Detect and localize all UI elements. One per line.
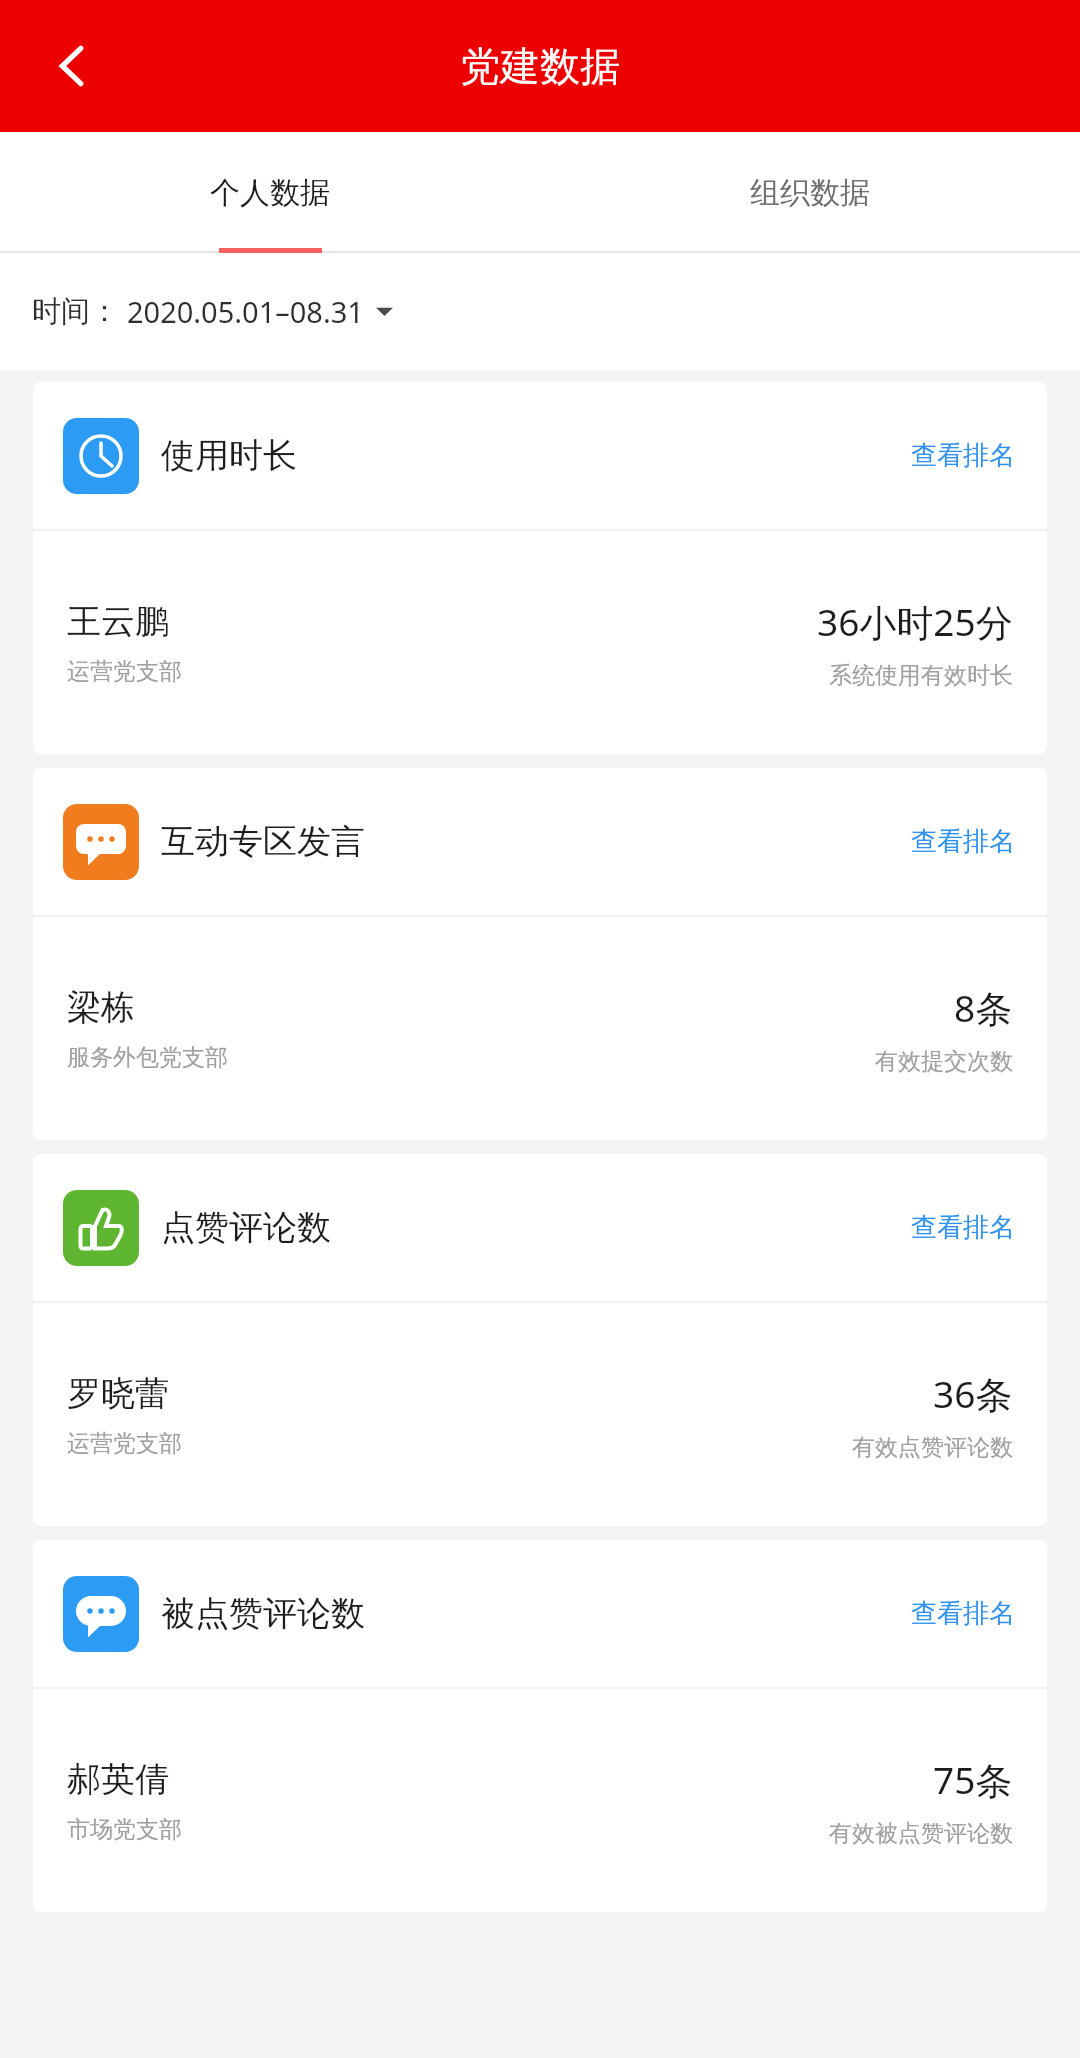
staticText: 查看排名 (911, 825, 1015, 858)
staticText: 互动专区发言 (161, 820, 365, 863)
staticText: 被点赞评论数 (161, 1592, 365, 1635)
staticText: 郝英倩 (67, 1758, 169, 1801)
button[interactable]: 个人数据 (0, 132, 540, 253)
button[interactable]: 查看排名 (905, 1197, 1021, 1258)
button[interactable]: 查看排名 (905, 425, 1021, 486)
staticText: 王云鹏 (67, 600, 169, 643)
staticText: 查看排名 (911, 439, 1015, 472)
button[interactable]: 组织数据 (540, 132, 1080, 253)
staticText: 有效点赞评论数 (852, 1433, 1013, 1462)
staticText: 查看排名 (911, 1597, 1015, 1630)
button[interactable]: Back (30, 24, 114, 108)
staticText: 党建数据 (460, 41, 620, 91)
staticText: 运营党支部 (67, 657, 182, 686)
button[interactable]: 点赞评论数 (33, 1154, 1047, 1526)
staticText: 罗晓蕾 (67, 1372, 169, 1415)
button[interactable]: 被点赞评论数 (33, 1540, 1047, 1912)
staticText: 2020.05.01–08.31 (127, 292, 364, 331)
staticText: 有效被点赞评论数 (829, 1819, 1013, 1848)
staticText: 8条 (954, 982, 1013, 1033)
staticText: 有效提交次数 (875, 1047, 1013, 1076)
staticText: 36小时25分 (817, 596, 1013, 647)
staticText: 时间： (32, 293, 119, 330)
staticText: 市场党支部 (67, 1815, 182, 1844)
staticText: 查看排名 (911, 1211, 1015, 1244)
staticText: 36条 (933, 1368, 1013, 1419)
button[interactable]: 互动专区发言 (33, 768, 1047, 1140)
staticText: 服务外包党支部 (67, 1043, 228, 1072)
staticText: 系统使用有效时长 (829, 661, 1013, 690)
staticText: 运营党支部 (67, 1429, 182, 1458)
button[interactable]: 查看排名 (905, 811, 1021, 872)
staticText: 组织数据 (750, 174, 870, 212)
staticText: 75条 (933, 1754, 1013, 1805)
staticText: 使用时长 (161, 434, 297, 477)
button[interactable]: 查看排名 (905, 1583, 1021, 1644)
staticText: 个人数据 (210, 174, 330, 212)
button[interactable]: 使用时长 (33, 382, 1047, 754)
staticText: 点赞评论数 (161, 1206, 331, 1249)
staticText: 梁栋 (67, 986, 135, 1029)
button[interactable]: 时间： (0, 253, 1080, 370)
